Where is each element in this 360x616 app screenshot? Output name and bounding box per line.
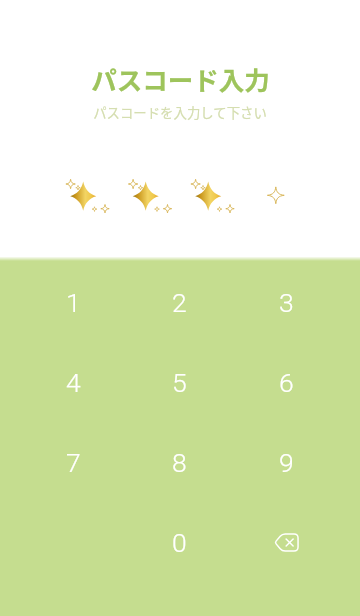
button[interactable]: 5 <box>126 342 233 422</box>
button[interactable]: 0 <box>126 502 233 582</box>
button[interactable]: 4 <box>20 342 126 422</box>
staticText: パスコード入力 <box>91 60 270 97</box>
button[interactable]: 1 <box>20 262 126 342</box>
button[interactable]: 7 <box>20 422 126 502</box>
staticText: 2 <box>172 287 187 318</box>
button[interactable]: 2 <box>126 262 233 342</box>
button[interactable]: 3 <box>233 262 340 342</box>
staticText: 7 <box>66 447 81 478</box>
button[interactable]: 9 <box>233 422 340 502</box>
button[interactable]: 6 <box>233 342 340 422</box>
button[interactable]: 8 <box>126 422 233 502</box>
staticText: 5 <box>172 367 187 398</box>
staticText: 9 <box>279 447 294 478</box>
staticText: 0 <box>172 527 187 558</box>
button[interactable]: Delete <box>233 502 340 582</box>
staticText: パスコードを入力して下さい <box>93 102 267 121</box>
staticText: 1 <box>66 287 81 318</box>
staticText: 4 <box>66 367 81 398</box>
staticText: 6 <box>279 367 294 398</box>
staticText: 8 <box>172 447 187 478</box>
staticText: 3 <box>279 287 294 318</box>
